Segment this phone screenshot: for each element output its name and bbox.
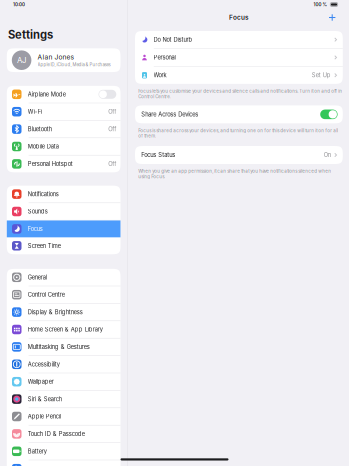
staticText: Wallpaper <box>28 378 54 385</box>
button[interactable]: Screen Time <box>7 237 120 254</box>
staticText: Battery <box>28 448 47 455</box>
button[interactable]: Toggle off <box>98 90 116 99</box>
button[interactable]: Work <box>135 67 343 84</box>
staticText: Bluetooth <box>28 126 52 132</box>
staticText: Off <box>108 160 116 167</box>
button[interactable]: Battery <box>7 443 120 460</box>
staticText: Settings <box>8 28 53 42</box>
staticText: Touch ID & Passcode <box>28 430 85 437</box>
button[interactable]: General <box>7 269 120 286</box>
staticText: Apple Pencil <box>28 413 61 420</box>
staticText: Off <box>108 108 116 115</box>
staticText: 100 % <box>314 2 328 7</box>
button[interactable]: Touch ID & Passcode <box>7 425 120 442</box>
button[interactable]: Airplane Mode <box>7 86 120 103</box>
staticText: Wi-Fi <box>28 108 42 115</box>
staticText: Focus lets you customise your devices an… <box>138 88 342 99</box>
button[interactable]: Focus <box>7 220 120 237</box>
button[interactable]: Accessibility <box>7 356 120 373</box>
staticText: Sounds <box>28 208 48 215</box>
staticText: 10:00 <box>13 2 25 7</box>
staticText: Airplane Mode <box>28 91 66 98</box>
staticText: AJ <box>17 55 26 65</box>
button[interactable]: Add Focus <box>326 11 338 24</box>
staticText: Do Not Disturb <box>154 36 193 43</box>
staticText: Off <box>108 126 116 132</box>
button[interactable]: Home Screen & App Library <box>7 321 120 338</box>
button[interactable]: Apple Pencil <box>7 408 120 425</box>
staticText: Home Screen & App Library <box>28 326 103 333</box>
button[interactable]: Personal Hotspot <box>7 155 120 172</box>
staticText: Display & Brightness <box>28 309 83 315</box>
staticText: Personal Hotspot <box>28 160 73 167</box>
staticText: Screen Time <box>28 242 61 249</box>
staticText: Share Across Devices <box>141 111 198 118</box>
button[interactable]: Notifications <box>7 186 120 203</box>
button[interactable]: Multitasking & Gestures <box>7 338 120 355</box>
button[interactable]: Sounds <box>7 203 120 220</box>
staticText: Focus is shared across your devices, and… <box>138 128 338 139</box>
button[interactable]: Do Not Disturb <box>135 31 343 48</box>
staticText: Personal <box>154 54 176 61</box>
staticText: Control Centre <box>28 291 65 298</box>
staticText: Alan Jones <box>38 53 75 61</box>
button[interactable]: Focus Status <box>135 146 343 164</box>
staticText: Notifications <box>28 191 59 197</box>
button[interactable]: Personal <box>135 49 343 66</box>
button[interactable]: AJ <box>7 48 120 72</box>
staticText: Focus Status <box>141 151 175 158</box>
button[interactable]: Mobile Data <box>7 138 120 155</box>
button[interactable]: Wallpaper <box>7 373 120 390</box>
staticText: Focus <box>229 14 249 21</box>
staticText: Siri & Search <box>28 396 62 402</box>
staticText: Multitasking & Gestures <box>28 343 90 350</box>
staticText: When you give an app permission, it can … <box>138 168 331 179</box>
button[interactable]: Control Centre <box>7 286 120 303</box>
button[interactable]: Privacy & Security <box>7 460 120 466</box>
staticText: General <box>28 274 47 281</box>
staticText: Accessibility <box>28 361 60 368</box>
staticText: Focus <box>28 225 43 232</box>
staticText: On <box>324 151 331 158</box>
button[interactable]: Bluetooth <box>7 121 120 138</box>
button[interactable]: Toggle on <box>320 110 338 119</box>
staticText: Mobile Data <box>28 143 59 150</box>
staticText: Apple ID, iCloud, Media & Purchases <box>38 62 111 67</box>
button[interactable]: Wi-Fi <box>7 103 120 120</box>
button[interactable]: Display & Brightness <box>7 304 120 321</box>
button[interactable]: Siri & Search <box>7 391 120 408</box>
staticText: Set Up <box>312 72 331 79</box>
staticText: Work <box>154 72 167 79</box>
